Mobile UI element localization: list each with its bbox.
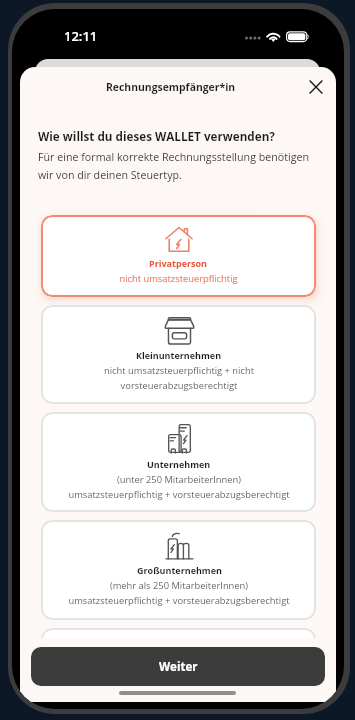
- button[interactable]: Schließen: [304, 75, 328, 99]
- staticText: Kleinunternehmen: [136, 349, 222, 361]
- staticText: (mehr als 250 MitarbeiterInnen) umsatzst…: [68, 579, 290, 607]
- button[interactable]: Unternehmen: [41, 412, 316, 512]
- staticText: Wie willst du dieses WALLET verwenden?: [38, 128, 275, 144]
- button[interactable]: Weiter: [31, 647, 325, 686]
- button[interactable]: Privatperson: [41, 215, 316, 297]
- staticText: Für eine formal korrekte Rechnungsstellu…: [38, 150, 330, 182]
- staticText: Rechnungsempfänger*in: [106, 80, 236, 94]
- staticText: Unternehmen: [147, 458, 211, 470]
- button[interactable]: Kleinunternehmen: [41, 305, 316, 404]
- staticText: nicht umsatzsteuerpflichtig + nicht vors…: [104, 364, 254, 392]
- button[interactable]: [41, 628, 316, 702]
- staticText: Großunternehmen: [137, 564, 222, 576]
- staticText: nicht umsatzsteuerpflichtig: [119, 272, 238, 285]
- staticText: Privatperson: [149, 257, 208, 269]
- staticText: Weiter: [159, 659, 198, 675]
- staticText: (unter 250 MitarbeiterInnen) umsatzsteue…: [68, 473, 290, 501]
- staticText: 12:11: [64, 27, 98, 45]
- button[interactable]: Großunternehmen: [41, 520, 316, 620]
